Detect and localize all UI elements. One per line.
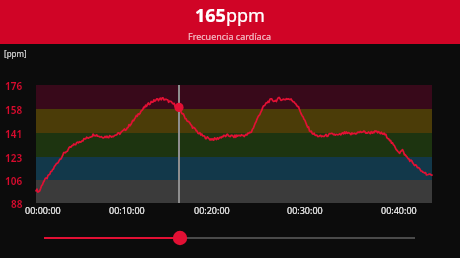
staticText: [ppm] [4,48,27,59]
staticText: 141 [5,127,23,141]
staticText: 88 [11,197,23,211]
staticText: 165ppm [195,3,265,28]
staticText: 00:40:00 [381,204,417,216]
staticText: 00:00:00 [25,204,61,216]
staticText: 123 [5,151,23,165]
staticText: 106 [5,174,23,188]
staticText: 00:10:00 [109,204,145,216]
staticText: 00:20:00 [194,204,230,216]
button[interactable]: Gráfico de frecuencia cardíaca [0,0,460,258]
staticText: 158 [5,103,23,117]
staticText: 00:30:00 [287,204,323,216]
button[interactable]: 165ppm [0,0,460,44]
staticText: Frecuencia cardíaca [188,30,272,42]
staticText: 176 [5,79,23,93]
